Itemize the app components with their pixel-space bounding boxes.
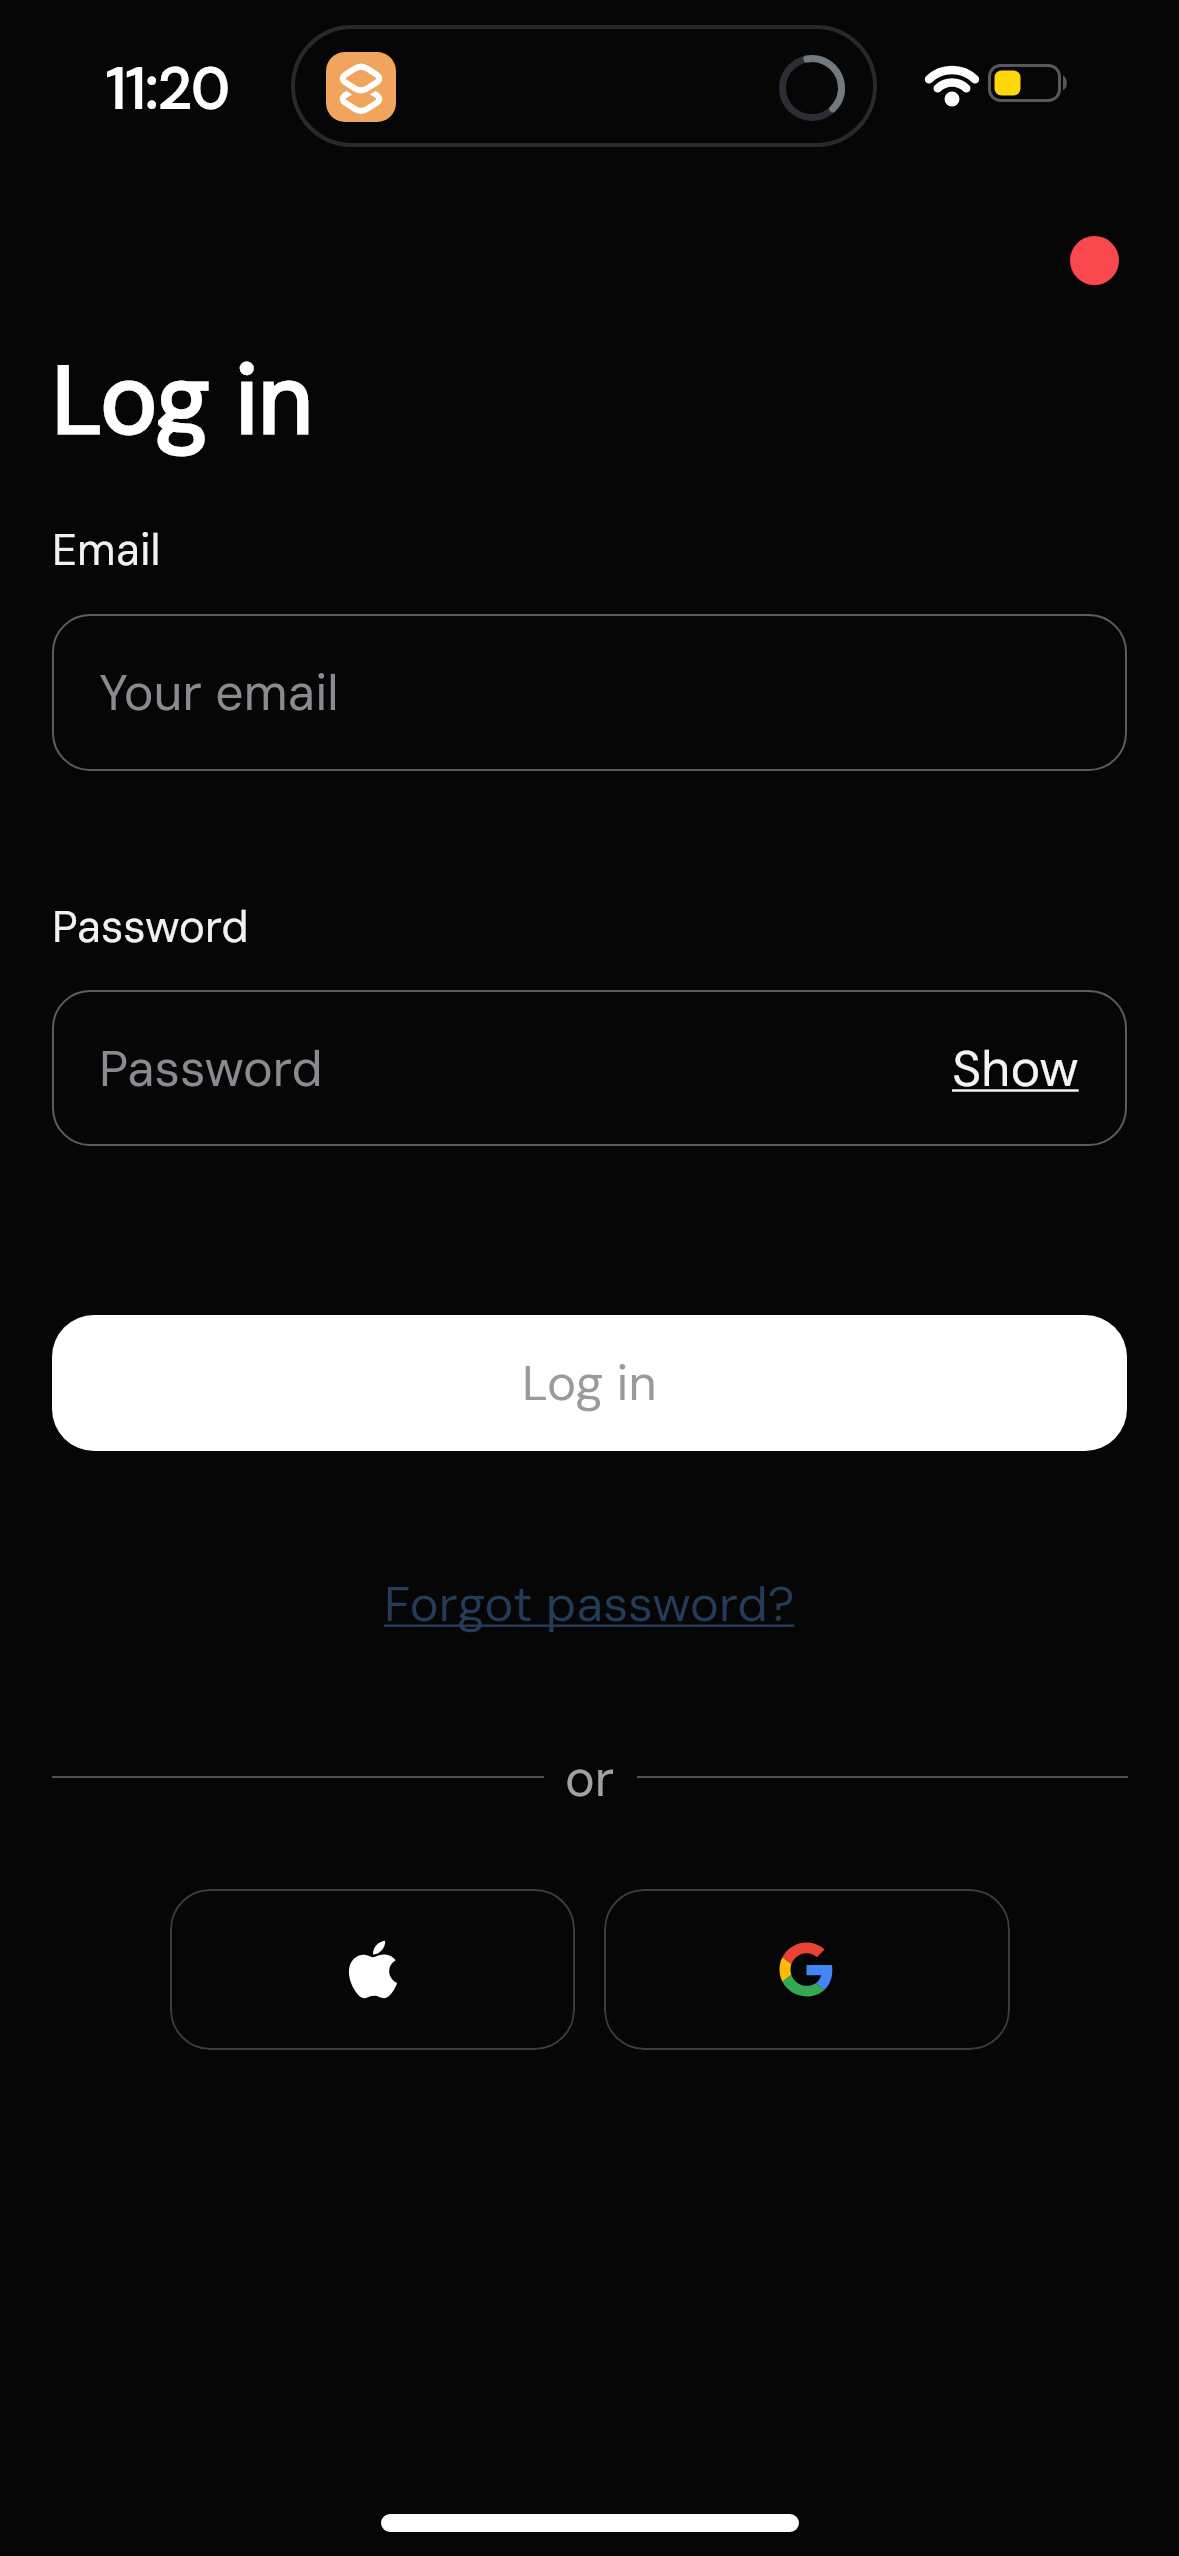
button[interactable]: Log in (52, 1315, 1127, 1451)
button[interactable]: Forgot password? (384, 1572, 795, 1636)
button[interactable] (170, 1889, 575, 2050)
staticText: 11:20 (106, 50, 230, 126)
button[interactable] (604, 1889, 1010, 2050)
staticText: Password (99, 1036, 323, 1101)
staticText: Log in (52, 339, 314, 463)
staticText: Log in (522, 1351, 657, 1415)
staticText: Your email (99, 660, 339, 725)
button[interactable]: Password (52, 990, 1127, 1146)
staticText: or (565, 1746, 615, 1811)
staticText: Email (52, 521, 161, 578)
button[interactable]: Your email (52, 614, 1127, 771)
button[interactable]: Show (952, 1036, 1079, 1101)
staticText: Password (52, 898, 249, 955)
